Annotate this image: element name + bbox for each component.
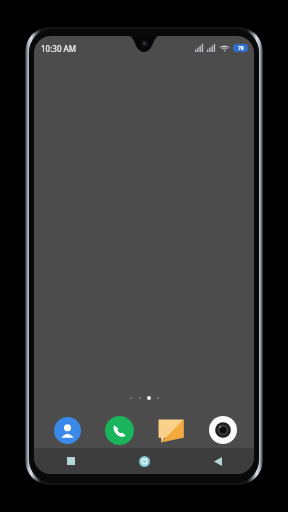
button[interactable]: Contacts bbox=[50, 413, 84, 447]
staticText: 10:30 AM bbox=[41, 43, 77, 54]
staticText: 78 bbox=[238, 45, 244, 52]
button[interactable]: Back bbox=[181, 448, 254, 474]
button[interactable]: Messages bbox=[154, 413, 188, 447]
button[interactable]: Home bbox=[108, 448, 181, 474]
button[interactable]: Camera bbox=[206, 413, 240, 447]
button[interactable]: Recents bbox=[34, 448, 108, 474]
button[interactable]: Phone bbox=[102, 413, 136, 447]
